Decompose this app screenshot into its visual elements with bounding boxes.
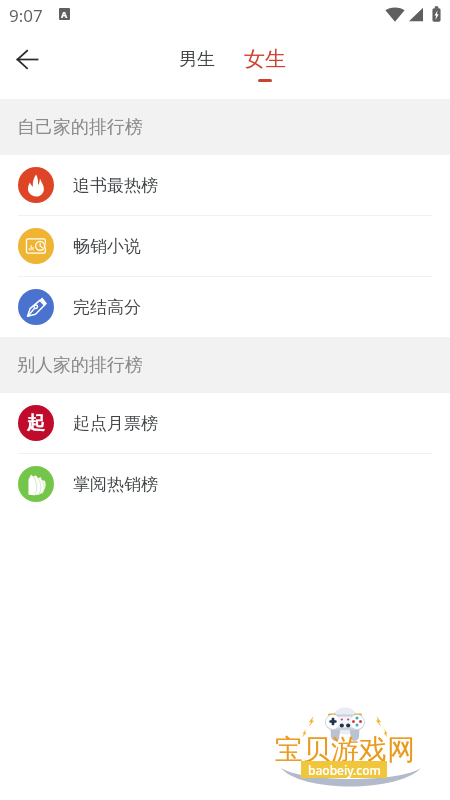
button[interactable]: 起 [0, 393, 450, 453]
button[interactable]: 畅销小说 [0, 216, 450, 276]
staticText: 追书最热榜 [73, 175, 158, 196]
button[interactable]: Back [6, 38, 48, 80]
button[interactable]: 完结高分 [0, 277, 450, 337]
button[interactable]: 追书最热榜 [0, 155, 450, 215]
staticText: 宝贝游戏网 [275, 732, 415, 767]
staticText: 女生 [244, 46, 286, 72]
button[interactable]: 男生 [168, 41, 226, 77]
staticText: 别人家的排行榜 [17, 354, 143, 377]
staticText: 男生 [179, 48, 215, 71]
staticText: 起 [27, 412, 45, 435]
staticText: 起点月票榜 [73, 413, 158, 434]
staticText: 完结高分 [73, 297, 141, 318]
button[interactable]: 女生 [233, 46, 297, 98]
staticText: baobeiy.com [308, 762, 381, 778]
staticText: 掌阅热销榜 [73, 474, 158, 495]
staticText: A [61, 8, 68, 20]
staticText: 9:07 [9, 4, 43, 27]
staticText: 畅销小说 [73, 236, 141, 257]
button[interactable]: 掌阅热销榜 [0, 454, 450, 514]
staticText: 自己家的排行榜 [17, 116, 143, 139]
